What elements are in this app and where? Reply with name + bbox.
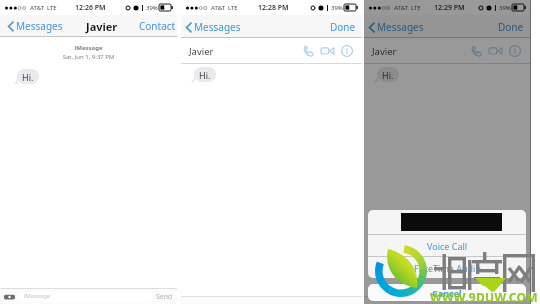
staticText: AT&T [394,4,408,12]
staticText: Javier [86,19,118,34]
staticText: 12:26 PM [75,3,106,13]
button[interactable]: Messages [369,20,424,34]
staticText: AT&T [30,4,44,12]
staticText: Hi. [22,71,34,83]
staticText: Hi. [382,69,394,81]
staticText: LTE [228,4,238,12]
staticText: Sat, Jun 1, 9:37 PM [0,53,177,61]
button[interactable]: Messages [186,20,241,34]
staticText: Cancel [432,287,462,299]
button[interactable]: iMessage [18,292,152,302]
button[interactable]: Voice call [302,45,314,57]
button[interactable]: Voice call [470,45,482,57]
staticText: Javier [189,45,214,58]
staticText: Hi. [199,69,211,81]
staticText: Voice Call [427,240,468,252]
button[interactable]: FaceTime video [321,46,334,56]
button[interactable]: Done [330,20,356,34]
staticText: 39% [331,4,343,12]
staticText: Contact [139,19,176,33]
button[interactable]: Send [156,292,173,302]
button[interactable]: Contact info [341,45,353,57]
button[interactable]: Messages [8,19,63,33]
staticText: LTE [47,4,57,12]
button[interactable]: Take photo [4,293,15,300]
staticText: 12:29 PM [434,3,465,13]
staticText: AT&T [211,4,225,12]
staticText: Done [498,20,524,34]
staticText: 39% [499,4,511,12]
staticText: 39% [146,4,158,12]
staticText: Javier [372,45,397,58]
button[interactable]: Contact [139,19,176,33]
staticText: iMessage [19,292,51,300]
staticText: iMessage [0,44,177,52]
button[interactable]: FaceTime video [489,46,502,56]
staticText: Messages [16,19,63,33]
button[interactable]: Cancel [368,284,526,301]
staticText: Done [330,20,356,34]
button[interactable]: FaceTime Audio [368,257,526,278]
staticText: WWW.9DUW.COM [430,289,538,304]
staticText: Send [156,292,173,302]
button[interactable]: Done [498,20,524,34]
staticText: 12:28 PM [258,3,289,13]
staticText: Messages [377,20,424,34]
button[interactable]: Voice Call [368,235,526,256]
staticText: FaceTime Audio [414,262,481,274]
button[interactable]: Contact info [509,45,521,57]
staticText: Messages [194,20,241,34]
staticText: LTE [411,4,421,12]
